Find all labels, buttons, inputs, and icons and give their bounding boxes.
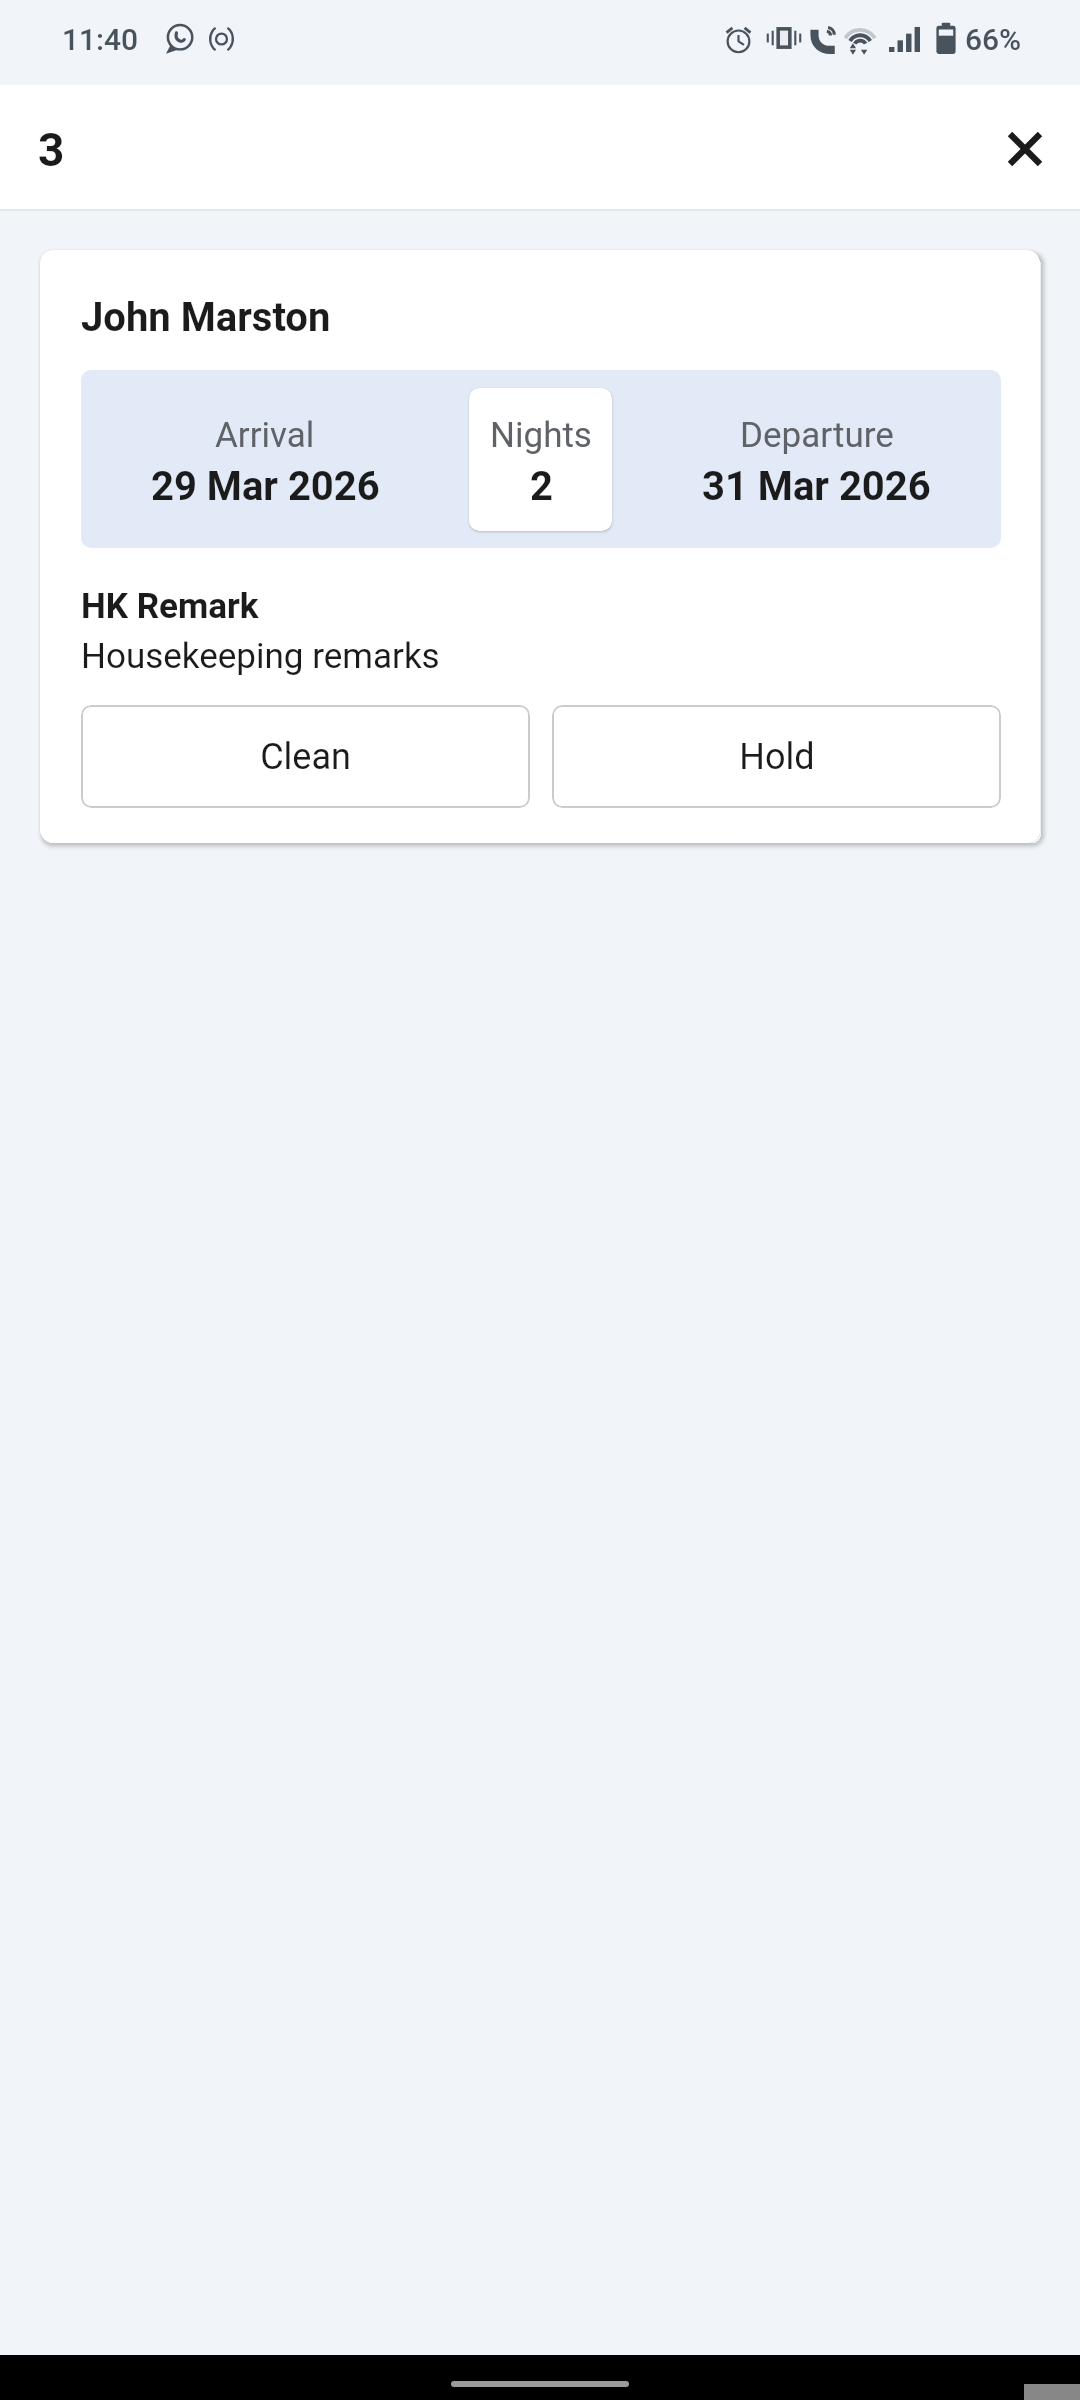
staticText: Hold xyxy=(739,736,815,778)
staticText: 3 xyxy=(38,123,65,177)
staticText: 29 Mar 2026 xyxy=(151,463,380,510)
staticText: Housekeeping remarks xyxy=(81,636,440,677)
staticText: 11:40 xyxy=(62,22,139,57)
staticText: Departure xyxy=(740,415,894,456)
staticText: John Marston xyxy=(81,294,331,341)
staticText: Clean xyxy=(260,736,351,778)
button[interactable]: Hold xyxy=(552,705,1001,808)
staticText: 66% xyxy=(965,22,1022,57)
staticText: Nights xyxy=(490,415,592,456)
staticText: HK Remark xyxy=(81,586,259,627)
staticText: Arrival xyxy=(215,415,315,456)
staticText: 2 xyxy=(530,463,553,510)
button[interactable]: Clean xyxy=(81,705,530,808)
button[interactable]: Close xyxy=(977,101,1073,197)
staticText: 31 Mar 2026 xyxy=(702,463,931,510)
